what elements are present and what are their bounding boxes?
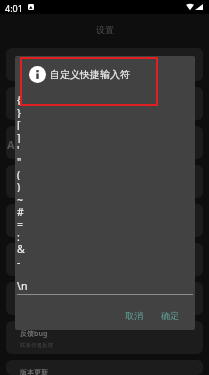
button[interactable]: 语言设置 [6, 282, 203, 315]
button[interactable]: } [17, 106, 193, 118]
staticText: ' [17, 143, 20, 155]
button[interactable]: 关于应用 [6, 243, 203, 276]
button[interactable]: ~ [17, 193, 193, 205]
staticText: - [17, 255, 21, 267]
button[interactable]: 编辑器设置 [6, 165, 203, 198]
other: Signal [195, 4, 203, 10]
staticText: \n [17, 279, 28, 291]
staticText: A [7, 137, 15, 152]
other: Screenshot [28, 4, 34, 10]
button[interactable]: 版本更新 [6, 360, 203, 375]
button[interactable]: ' [17, 143, 193, 155]
staticText: : [17, 230, 20, 242]
button[interactable]: 快捷输入符 [6, 48, 203, 81]
button[interactable]: 主题颜色 [6, 87, 203, 120]
button[interactable]: : [17, 230, 193, 242]
staticText: 关于应用 [20, 251, 48, 260]
staticText: ) [17, 180, 21, 192]
button[interactable]: " [17, 155, 193, 167]
staticText: 设置 [96, 24, 114, 35]
staticText: 快捷输入符 [20, 56, 55, 65]
button[interactable]: [ [17, 118, 193, 130]
staticText: 编辑时自动保存文件 [20, 224, 70, 231]
button[interactable]: 自动保存 [6, 204, 203, 237]
staticText: 语言设置 [20, 290, 48, 299]
staticText: 取消 [125, 310, 143, 321]
button[interactable]: A [6, 126, 203, 159]
staticText: " [17, 155, 22, 167]
staticText: & [17, 242, 25, 254]
staticText: # [17, 205, 24, 217]
button[interactable]: ) [17, 180, 193, 192]
staticText: 主题颜色 [20, 95, 48, 104]
button[interactable]: { [17, 93, 193, 105]
button[interactable]: - [17, 255, 193, 267]
staticText: ( [17, 168, 21, 180]
staticText: { [17, 93, 21, 105]
button[interactable]: 取消 [119, 306, 149, 325]
staticText: 自定义快捷输入符 [50, 68, 130, 81]
staticText: 自定义快捷输入符 [20, 68, 64, 75]
staticText: ] [17, 131, 21, 143]
button[interactable]: ( [17, 168, 193, 180]
button[interactable]: 确定 [155, 306, 185, 325]
button[interactable]: ] [17, 131, 193, 143]
button[interactable]: # [17, 205, 193, 217]
staticText: 确定 [161, 310, 179, 321]
staticText: 4:01 [5, 2, 23, 14]
staticText: 版本更新 [20, 368, 48, 375]
button[interactable]: \n [17, 279, 193, 291]
other: Wifi [186, 4, 194, 10]
staticText: = [17, 217, 24, 229]
staticText: 自动保存 [20, 212, 48, 221]
button[interactable]: 反馈bug [6, 321, 203, 354]
button[interactable]: = [17, 217, 193, 229]
staticText: ~ [17, 193, 24, 205]
staticText: 反馈bug [20, 329, 48, 339]
staticText: 联系作者反馈 [20, 342, 53, 349]
staticText: [ [17, 118, 21, 130]
staticText: } [17, 106, 21, 118]
staticText: 切换应用主题颜色 [20, 107, 64, 114]
button[interactable]: & [17, 242, 193, 254]
